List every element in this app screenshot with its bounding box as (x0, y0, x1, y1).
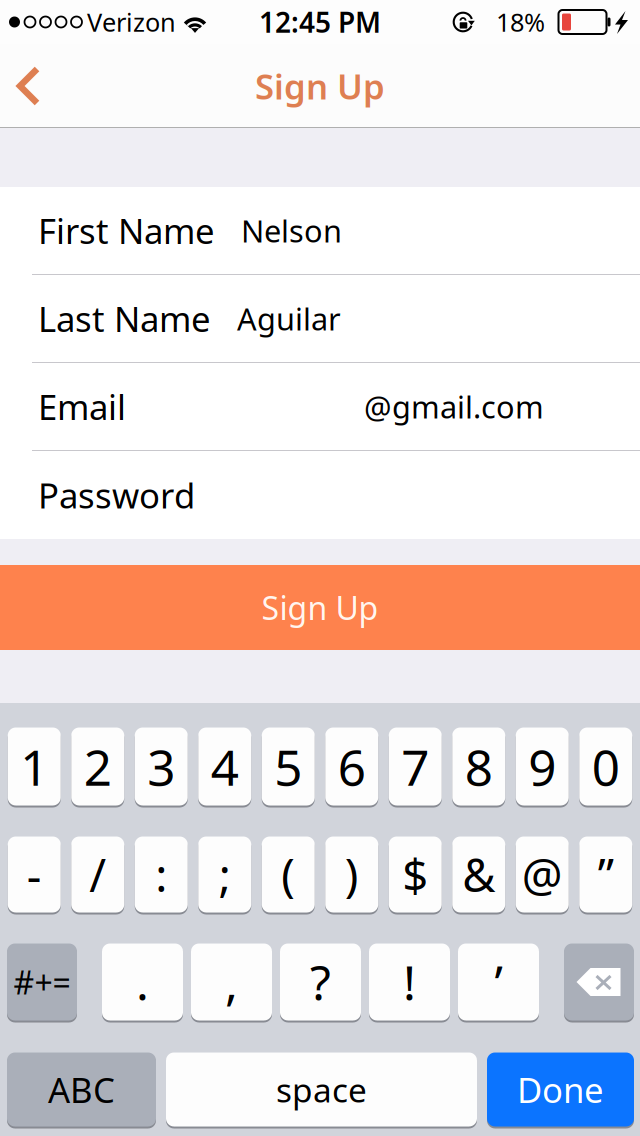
button[interactable]: 0 (579, 726, 632, 807)
staticText: First Name (38, 207, 215, 253)
staticText: 6 (338, 734, 366, 799)
button[interactable]: . (102, 942, 183, 1022)
button[interactable]: space (166, 1051, 477, 1128)
button[interactable]: & (452, 835, 505, 914)
staticText: 3 (147, 734, 175, 799)
staticText: 0 (592, 734, 620, 799)
button[interactable]: : (135, 835, 188, 914)
staticText: . (136, 950, 149, 1014)
button[interactable]: ; (198, 835, 251, 914)
staticText: #+= (13, 961, 70, 1003)
staticText: Verizon (87, 5, 176, 39)
staticText: / (89, 844, 106, 905)
staticText: 12:45 PM (259, 3, 381, 41)
staticText: Aguilar (237, 298, 341, 339)
button[interactable]: 8 (452, 726, 505, 807)
staticText: ’ (494, 950, 502, 1014)
button[interactable]: Last Name (0, 275, 640, 363)
staticText: @ (522, 844, 563, 905)
button[interactable]: $ (389, 835, 442, 914)
staticText: @gmail.com (364, 386, 544, 427)
staticText: 5 (274, 734, 302, 799)
staticText: ; (219, 844, 231, 905)
button[interactable]: @ (516, 835, 569, 914)
staticText: Sign Up (255, 63, 385, 109)
staticText: Done (517, 1066, 604, 1112)
staticText: 18% (496, 5, 545, 39)
staticText: space (276, 1067, 367, 1112)
staticText: ! (403, 950, 416, 1014)
button[interactable]: ABC (7, 1051, 156, 1128)
button[interactable]: 5 (262, 726, 315, 807)
button[interactable]: Delete (564, 942, 634, 1022)
button[interactable]: , (191, 942, 272, 1022)
button[interactable]: Sign Up (0, 565, 640, 650)
button[interactable]: ! (369, 942, 450, 1022)
button[interactable]: ? (280, 942, 361, 1022)
button[interactable]: 3 (135, 726, 188, 807)
button[interactable]: 4 (198, 726, 251, 807)
button[interactable]: 9 (516, 726, 569, 807)
button[interactable]: 2 (71, 726, 124, 807)
button[interactable]: ( (262, 835, 315, 914)
button[interactable]: / (71, 835, 124, 914)
staticText: 2 (84, 734, 112, 799)
staticText: Password (38, 472, 195, 518)
button[interactable]: Password (0, 451, 640, 539)
staticText: ABC (48, 1066, 115, 1112)
button[interactable]: 7 (389, 726, 442, 807)
staticText: - (27, 844, 42, 905)
button[interactable]: ’ (458, 942, 539, 1022)
staticText: $ (402, 844, 428, 905)
staticText: Email (38, 383, 126, 429)
button[interactable]: Email (0, 363, 640, 451)
staticText: 9 (528, 734, 556, 799)
staticText: ” (598, 844, 614, 905)
staticText: 8 (465, 734, 493, 799)
staticText: : (155, 844, 167, 905)
button[interactable]: #+= (7, 942, 77, 1022)
staticText: ) (345, 844, 359, 905)
staticText: 4 (211, 734, 239, 799)
staticText: Nelson (241, 210, 342, 251)
staticText: ( (281, 844, 295, 905)
staticText: 1 (20, 734, 48, 799)
button[interactable]: 1 (8, 726, 61, 807)
staticText: Sign Up (261, 586, 378, 629)
button[interactable]: 6 (325, 726, 378, 807)
staticText: Last Name (38, 295, 211, 341)
button[interactable]: ) (325, 835, 378, 914)
button[interactable]: Back (0, 44, 72, 128)
button[interactable]: ” (579, 835, 632, 914)
staticText: , (225, 950, 238, 1014)
staticText: & (462, 844, 495, 905)
staticText: 7 (401, 734, 429, 799)
staticText: ? (310, 950, 331, 1014)
button[interactable]: Done (487, 1051, 634, 1128)
button[interactable]: First Name (0, 187, 640, 275)
button[interactable]: - (8, 835, 61, 914)
